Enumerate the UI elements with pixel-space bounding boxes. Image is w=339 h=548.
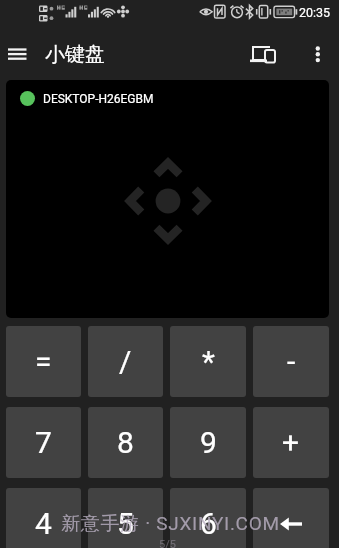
button[interactable]: * — [170, 326, 246, 397]
staticText: 5/5 — [159, 538, 176, 548]
staticText: / — [119, 344, 132, 379]
staticText: DESKTOP-H26EGBM — [43, 92, 154, 106]
staticText: 9 — [200, 425, 217, 460]
button[interactable]: 5 — [88, 488, 163, 548]
staticText: 20:35 — [299, 5, 331, 20]
staticText: * — [202, 344, 215, 379]
button[interactable]: Touchpad area — [6, 80, 329, 318]
staticText: 7 — [35, 425, 52, 460]
staticText: 8 — [117, 425, 134, 460]
staticText: - — [287, 344, 296, 379]
staticText: 小键盘 — [45, 42, 105, 67]
button[interactable]: 8 — [88, 407, 163, 478]
button[interactable]: 6 — [170, 488, 246, 548]
staticText: 新意手游 · SJXINYI.COM — [61, 512, 280, 536]
staticText: 6 — [200, 506, 217, 541]
button[interactable]: / — [88, 326, 163, 397]
button[interactable]: More options — [300, 30, 338, 80]
button[interactable]: - — [253, 326, 329, 397]
button[interactable]: Open navigation menu — [0, 30, 36, 80]
staticText: + — [282, 425, 300, 460]
staticText: = — [35, 344, 52, 379]
button[interactable]: 4 — [6, 488, 81, 548]
button[interactable]: 7 — [6, 407, 81, 478]
staticText: 5 — [117, 506, 134, 541]
button[interactable]: 9 — [170, 407, 246, 478]
button[interactable]: = — [6, 326, 81, 397]
staticText: 4 — [35, 506, 52, 541]
button[interactable]: Cast to device — [240, 30, 286, 80]
button[interactable]: Backspace — [253, 488, 329, 548]
button[interactable]: + — [253, 407, 329, 478]
